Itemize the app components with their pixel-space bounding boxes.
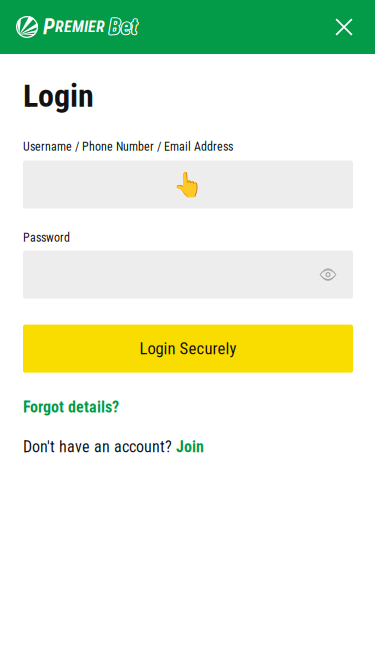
staticText: REMIER <box>55 18 105 36</box>
button[interactable]: Forgot details? <box>23 398 119 416</box>
staticText: Join <box>176 437 204 456</box>
staticText: Bet <box>109 15 137 40</box>
staticText: Login Securely <box>139 339 236 358</box>
button[interactable]: Show password <box>310 257 346 293</box>
staticText: Username / Phone Number / Email Address <box>23 139 233 154</box>
staticText <box>105 18 109 36</box>
button[interactable]: Close <box>322 5 366 49</box>
staticText: Bet <box>110 14 138 39</box>
staticText: Login <box>23 77 94 114</box>
staticText: Bet <box>110 15 138 40</box>
staticText: 👆 <box>173 170 203 199</box>
button[interactable]: Join <box>176 437 204 456</box>
staticText: Password <box>23 231 70 245</box>
staticText: P <box>43 14 55 39</box>
staticText: Forgot details? <box>23 398 119 416</box>
staticText: Bet <box>109 14 137 39</box>
staticText: Bet <box>109 14 137 39</box>
staticText: Don't have an account? <box>23 437 172 456</box>
staticText: Bet <box>108 14 136 39</box>
staticText: Bet <box>110 14 138 39</box>
button[interactable]: Login Securely <box>23 325 353 373</box>
staticText: Bet <box>108 14 136 39</box>
staticText: Bet <box>108 15 136 40</box>
